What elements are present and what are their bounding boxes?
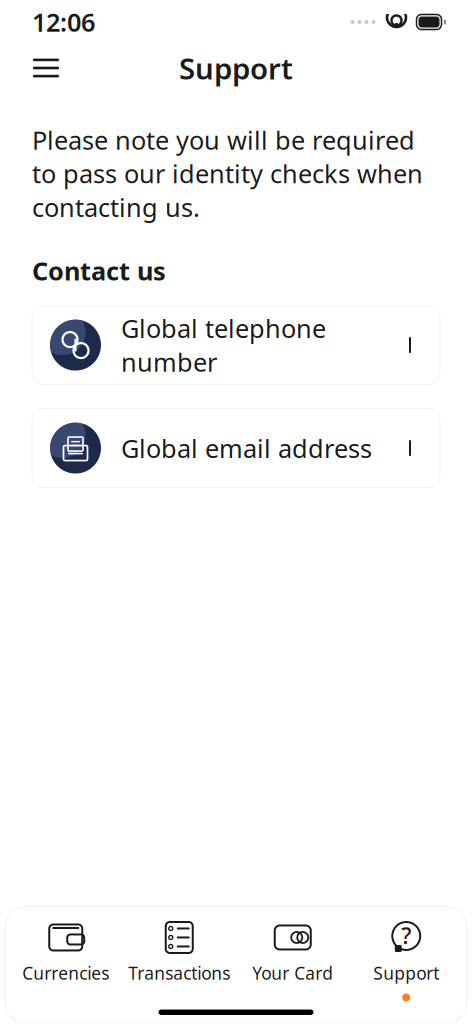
button[interactable]: Global telephone number [32,306,440,385]
button[interactable]: Menu [24,46,68,90]
staticText: Global telephone number [121,311,326,379]
button[interactable]: Your Card [236,906,349,1007]
button[interactable]: ? [349,906,463,1007]
staticText: ? [401,920,411,950]
staticText: Transactions [128,961,230,984]
button[interactable]: Global email address [32,409,440,488]
staticText: Your Card [252,961,333,984]
staticText: 12:06 [32,5,95,39]
staticText: Support [373,961,439,984]
button[interactable]: Transactions [122,906,236,1007]
staticText: Contact us [32,254,166,287]
staticText: Support [179,48,293,87]
button[interactable]: Currencies [9,906,122,1007]
staticText: Currencies [22,961,109,984]
staticText: Please note you will be required to pass… [32,123,423,224]
staticText: Global email address [121,431,372,465]
